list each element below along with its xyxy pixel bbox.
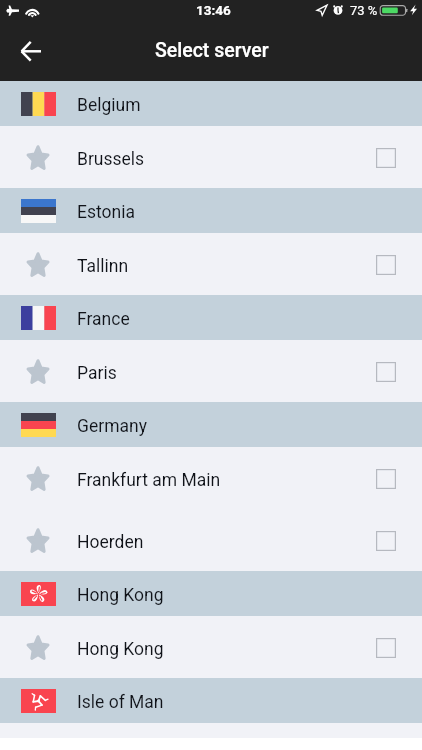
- button[interactable]: Favourite: [13, 616, 63, 678]
- button[interactable]: Favourite: [13, 340, 63, 402]
- staticText: 73 %: [350, 3, 378, 18]
- button[interactable]: Belgium: [0, 81, 422, 126]
- staticText: Estonia: [77, 202, 135, 223]
- staticText: Hoerden: [77, 532, 144, 553]
- button[interactable]: Favourite: [0, 447, 422, 509]
- button[interactable]: Favourite: [13, 509, 63, 571]
- button[interactable]: Favourite: [13, 126, 63, 188]
- staticText: Select server: [155, 39, 269, 62]
- button[interactable]: Favourite: [0, 233, 422, 295]
- staticText: Isle of Man: [77, 692, 164, 713]
- button[interactable]: Favourite: [13, 447, 63, 509]
- staticText: Paris: [77, 363, 117, 384]
- button[interactable]: Favourite: [0, 126, 422, 188]
- button[interactable]: France: [0, 295, 422, 340]
- button[interactable]: Favourite: [0, 509, 422, 571]
- button[interactable]: Favourite: [13, 233, 63, 295]
- button[interactable]: Select: [368, 509, 404, 571]
- staticText: 13:46: [196, 2, 231, 18]
- button[interactable]: Hong Kong: [0, 571, 422, 616]
- button[interactable]: Select: [368, 447, 404, 509]
- staticText: Frankfurt am Main: [77, 470, 221, 491]
- button[interactable]: Back: [0, 27, 62, 81]
- button[interactable]: Select: [368, 233, 404, 295]
- button[interactable]: Germany: [0, 402, 422, 447]
- staticText: Belgium: [77, 95, 141, 116]
- staticText: Tallinn: [77, 256, 129, 277]
- button[interactable]: Favourite: [0, 616, 422, 678]
- button[interactable]: Select: [368, 126, 404, 188]
- button[interactable]: Isle of Man: [0, 678, 422, 723]
- button[interactable]: Estonia: [0, 188, 422, 233]
- staticText: Hong Kong: [77, 639, 164, 660]
- button[interactable]: Select: [368, 616, 404, 678]
- button[interactable]: Favourite: [0, 340, 422, 402]
- staticText: Brussels: [77, 149, 145, 170]
- staticText: Hong Kong: [77, 585, 164, 606]
- staticText: Germany: [77, 416, 147, 437]
- staticText: France: [77, 309, 130, 330]
- button[interactable]: Select: [368, 340, 404, 402]
